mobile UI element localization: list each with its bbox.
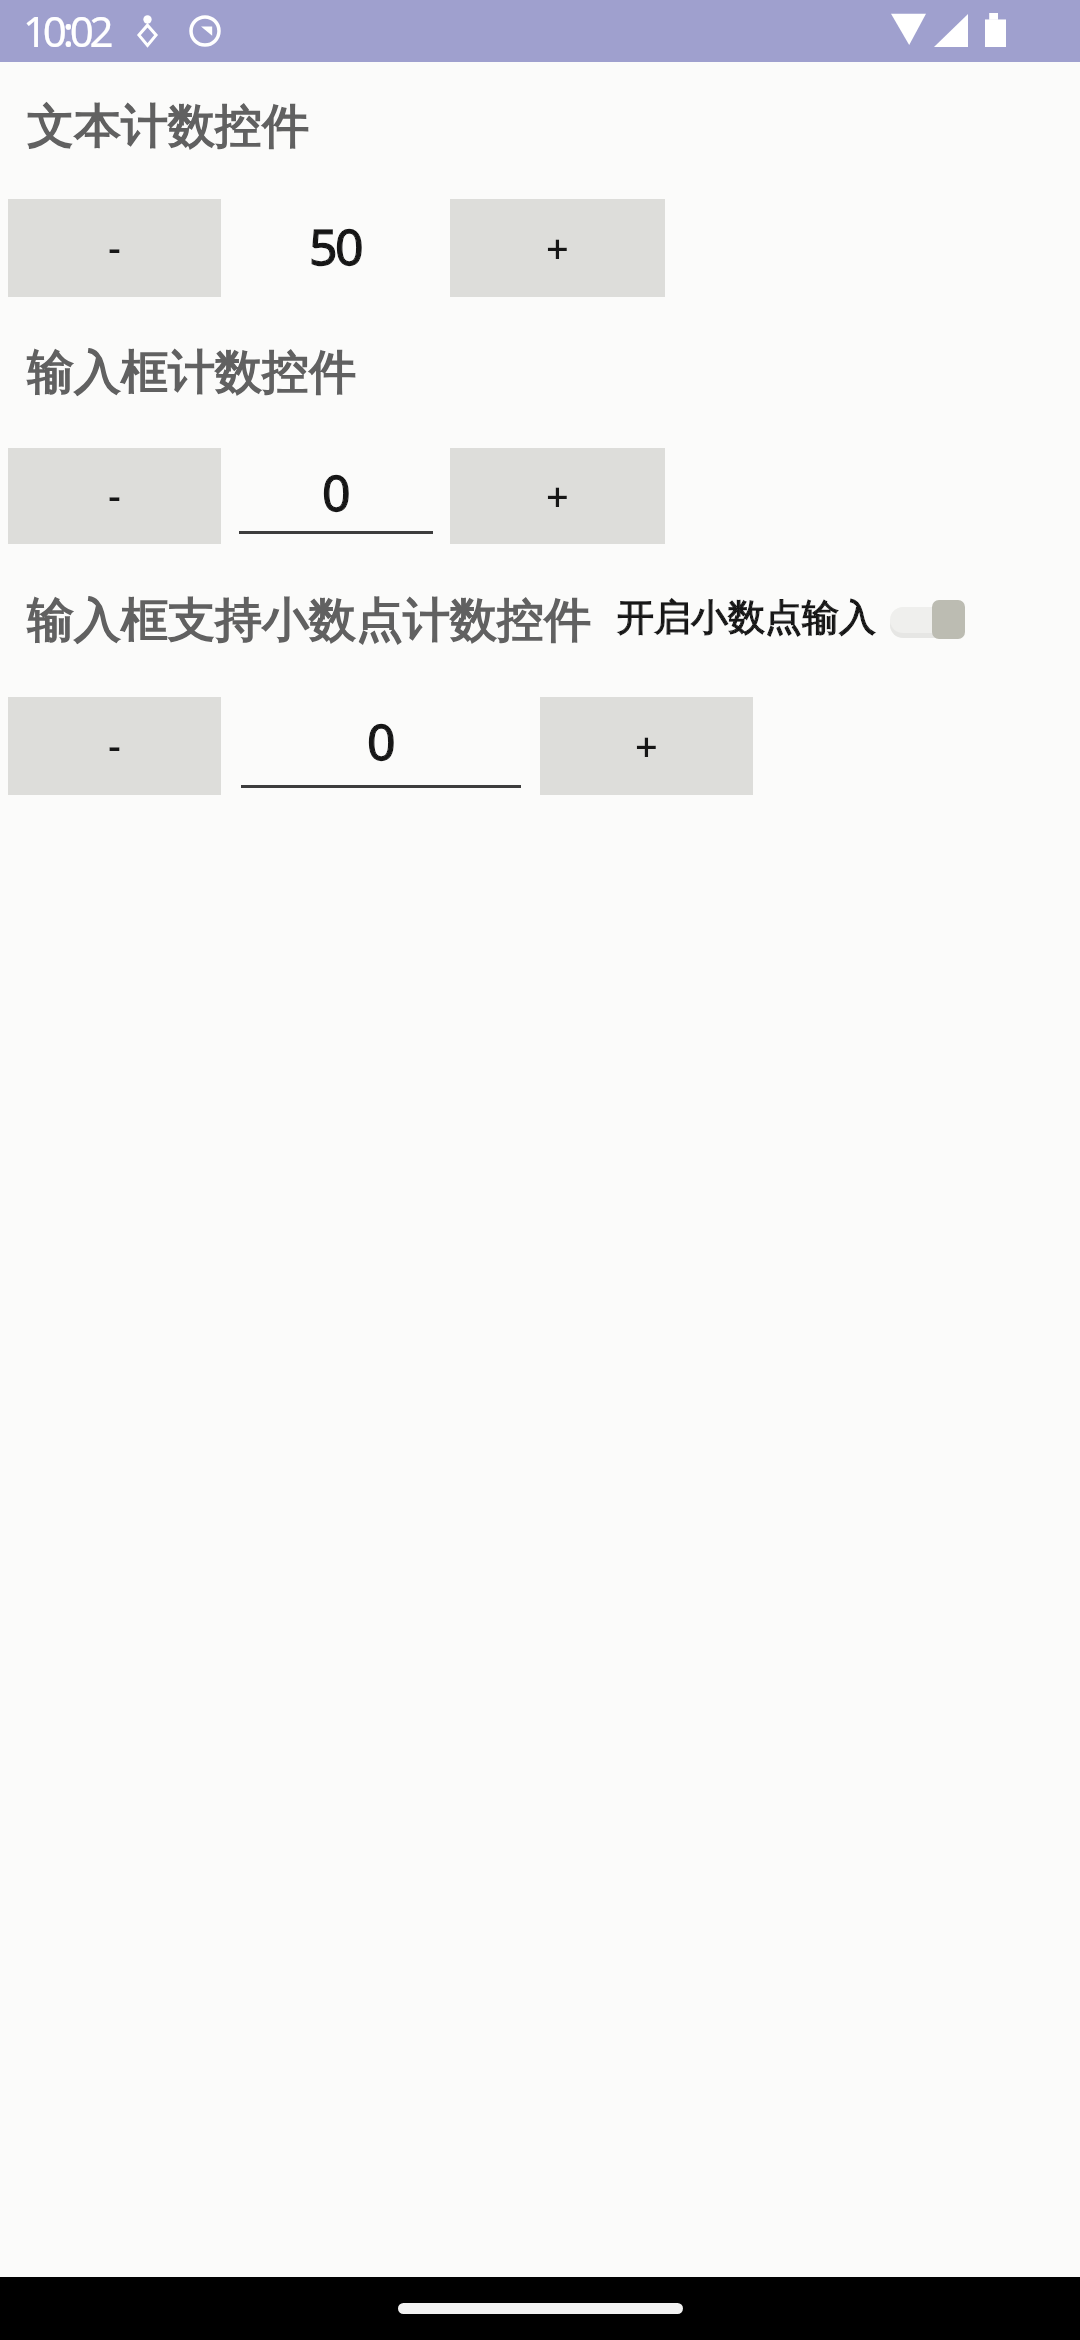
staticText: -: [108, 219, 121, 273]
button[interactable]: 减少: [8, 448, 221, 544]
staticText: +: [546, 220, 569, 274]
staticText: 50: [309, 212, 362, 280]
staticText: 0: [367, 707, 394, 775]
button[interactable]: 数值输入框: [221, 692, 540, 790]
staticText: 0: [322, 458, 349, 526]
staticText: 输入框支持小数点计数控件: [27, 591, 591, 650]
staticText: +: [635, 718, 658, 772]
button[interactable]: 数值输入框: [221, 444, 450, 540]
staticText: 0: [322, 458, 349, 526]
button[interactable]: 增加: [540, 697, 753, 795]
staticText: 文本计数控件: [27, 97, 309, 156]
button[interactable]: 减少: [8, 697, 221, 795]
staticText: 输入框计数控件: [27, 343, 356, 402]
staticText: 开启小数点输入: [617, 594, 876, 641]
staticText: -: [108, 467, 121, 521]
staticText: 文本计数控件: [27, 97, 309, 156]
button[interactable]: 开启小数点输入开关: [886, 596, 965, 640]
staticText: 50: [309, 212, 362, 280]
staticText: 输入框计数控件: [27, 343, 356, 402]
staticText: 输入框支持小数点计数控件: [27, 591, 591, 650]
staticText: +: [546, 468, 569, 522]
staticText: 开启小数点输入: [617, 594, 876, 641]
button[interactable]: 开启小数点输入: [617, 594, 876, 641]
staticText: 10:02: [23, 2, 110, 59]
staticText: -: [108, 717, 121, 771]
staticText: 0: [367, 707, 394, 775]
button[interactable]: 增加: [450, 199, 665, 297]
button[interactable]: 增加: [450, 448, 665, 544]
button[interactable]: 减少: [8, 199, 221, 297]
